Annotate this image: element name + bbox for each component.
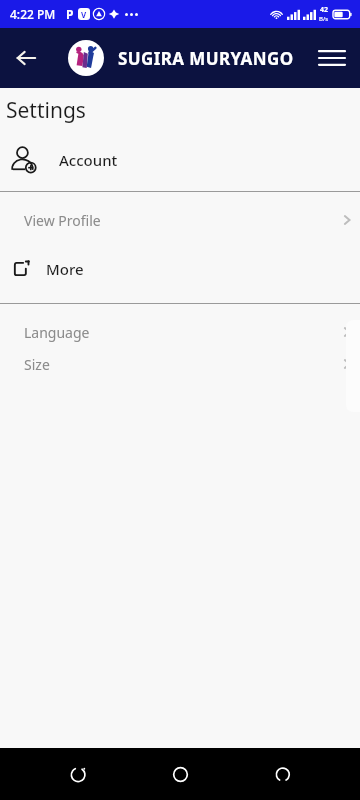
staticText: SUGIRA MURYANGO xyxy=(118,47,294,70)
staticText: Language xyxy=(24,323,90,342)
button[interactable]: Recent apps xyxy=(54,750,102,798)
button[interactable]: Language xyxy=(0,316,360,348)
button[interactable]: Home xyxy=(156,750,204,798)
staticText: Size xyxy=(24,355,50,374)
staticText: More xyxy=(46,259,84,279)
staticText: Account xyxy=(59,150,118,170)
button[interactable]: Menu xyxy=(304,30,360,86)
staticText: View Profile xyxy=(24,211,101,230)
button[interactable]: View Profile xyxy=(0,204,360,236)
staticText: 42 xyxy=(320,5,329,15)
button[interactable]: Back xyxy=(258,750,306,798)
button[interactable]: Back xyxy=(0,32,52,84)
staticText: P xyxy=(66,6,74,22)
staticText: V xyxy=(81,9,87,20)
staticText: Settings xyxy=(6,96,86,125)
button[interactable]: Account xyxy=(0,139,360,181)
staticText: B/s xyxy=(319,15,329,23)
staticText: 4:22 PM xyxy=(10,6,56,22)
button[interactable]: More xyxy=(0,252,360,286)
button[interactable]: Size xyxy=(0,348,360,380)
